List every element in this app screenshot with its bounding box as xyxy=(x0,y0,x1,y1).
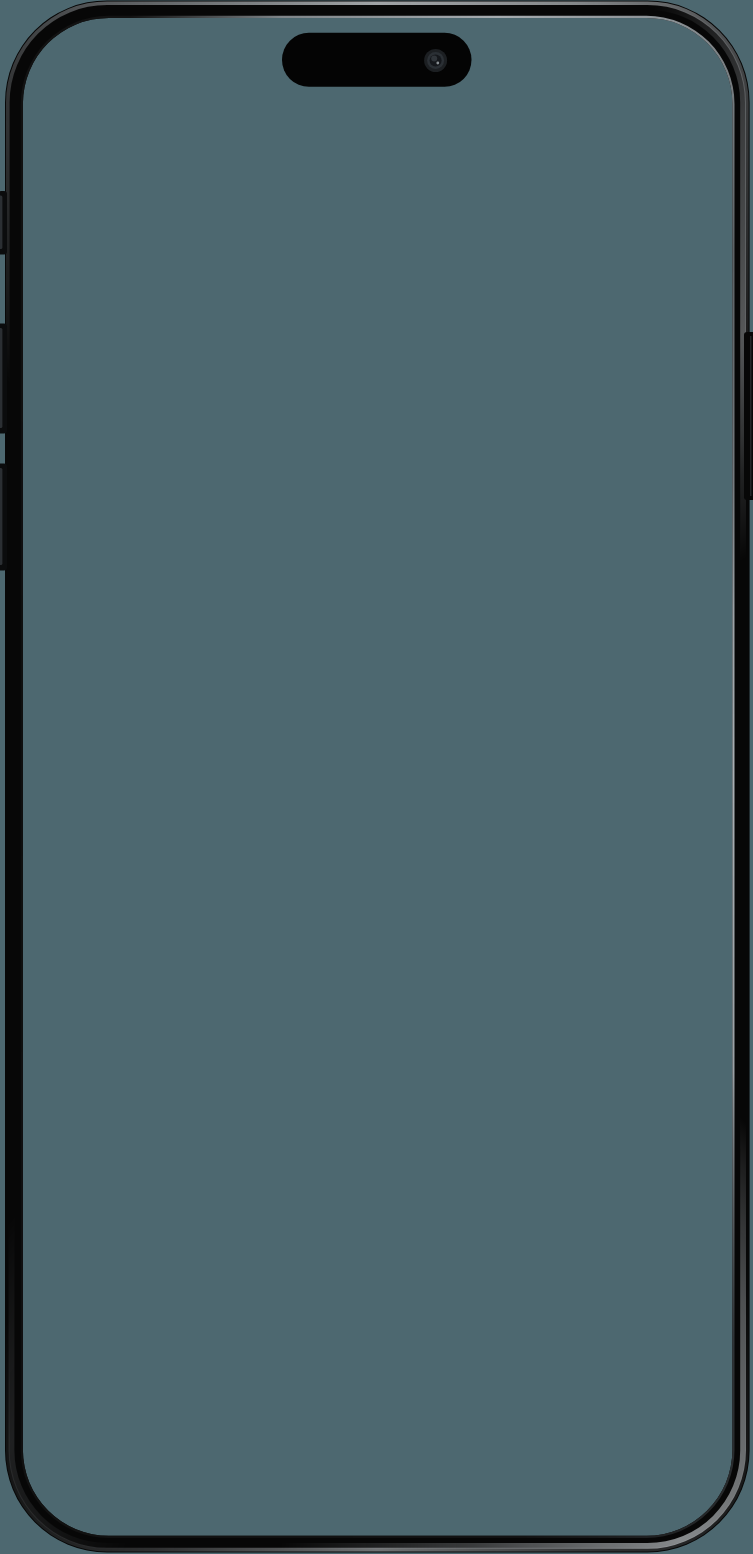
button[interactable]: Ring/Silent switch xyxy=(0,191,9,255)
button[interactable]: Power xyxy=(744,332,753,500)
button[interactable]: Volume down xyxy=(0,463,9,571)
button[interactable]: Volume up xyxy=(0,323,9,434)
